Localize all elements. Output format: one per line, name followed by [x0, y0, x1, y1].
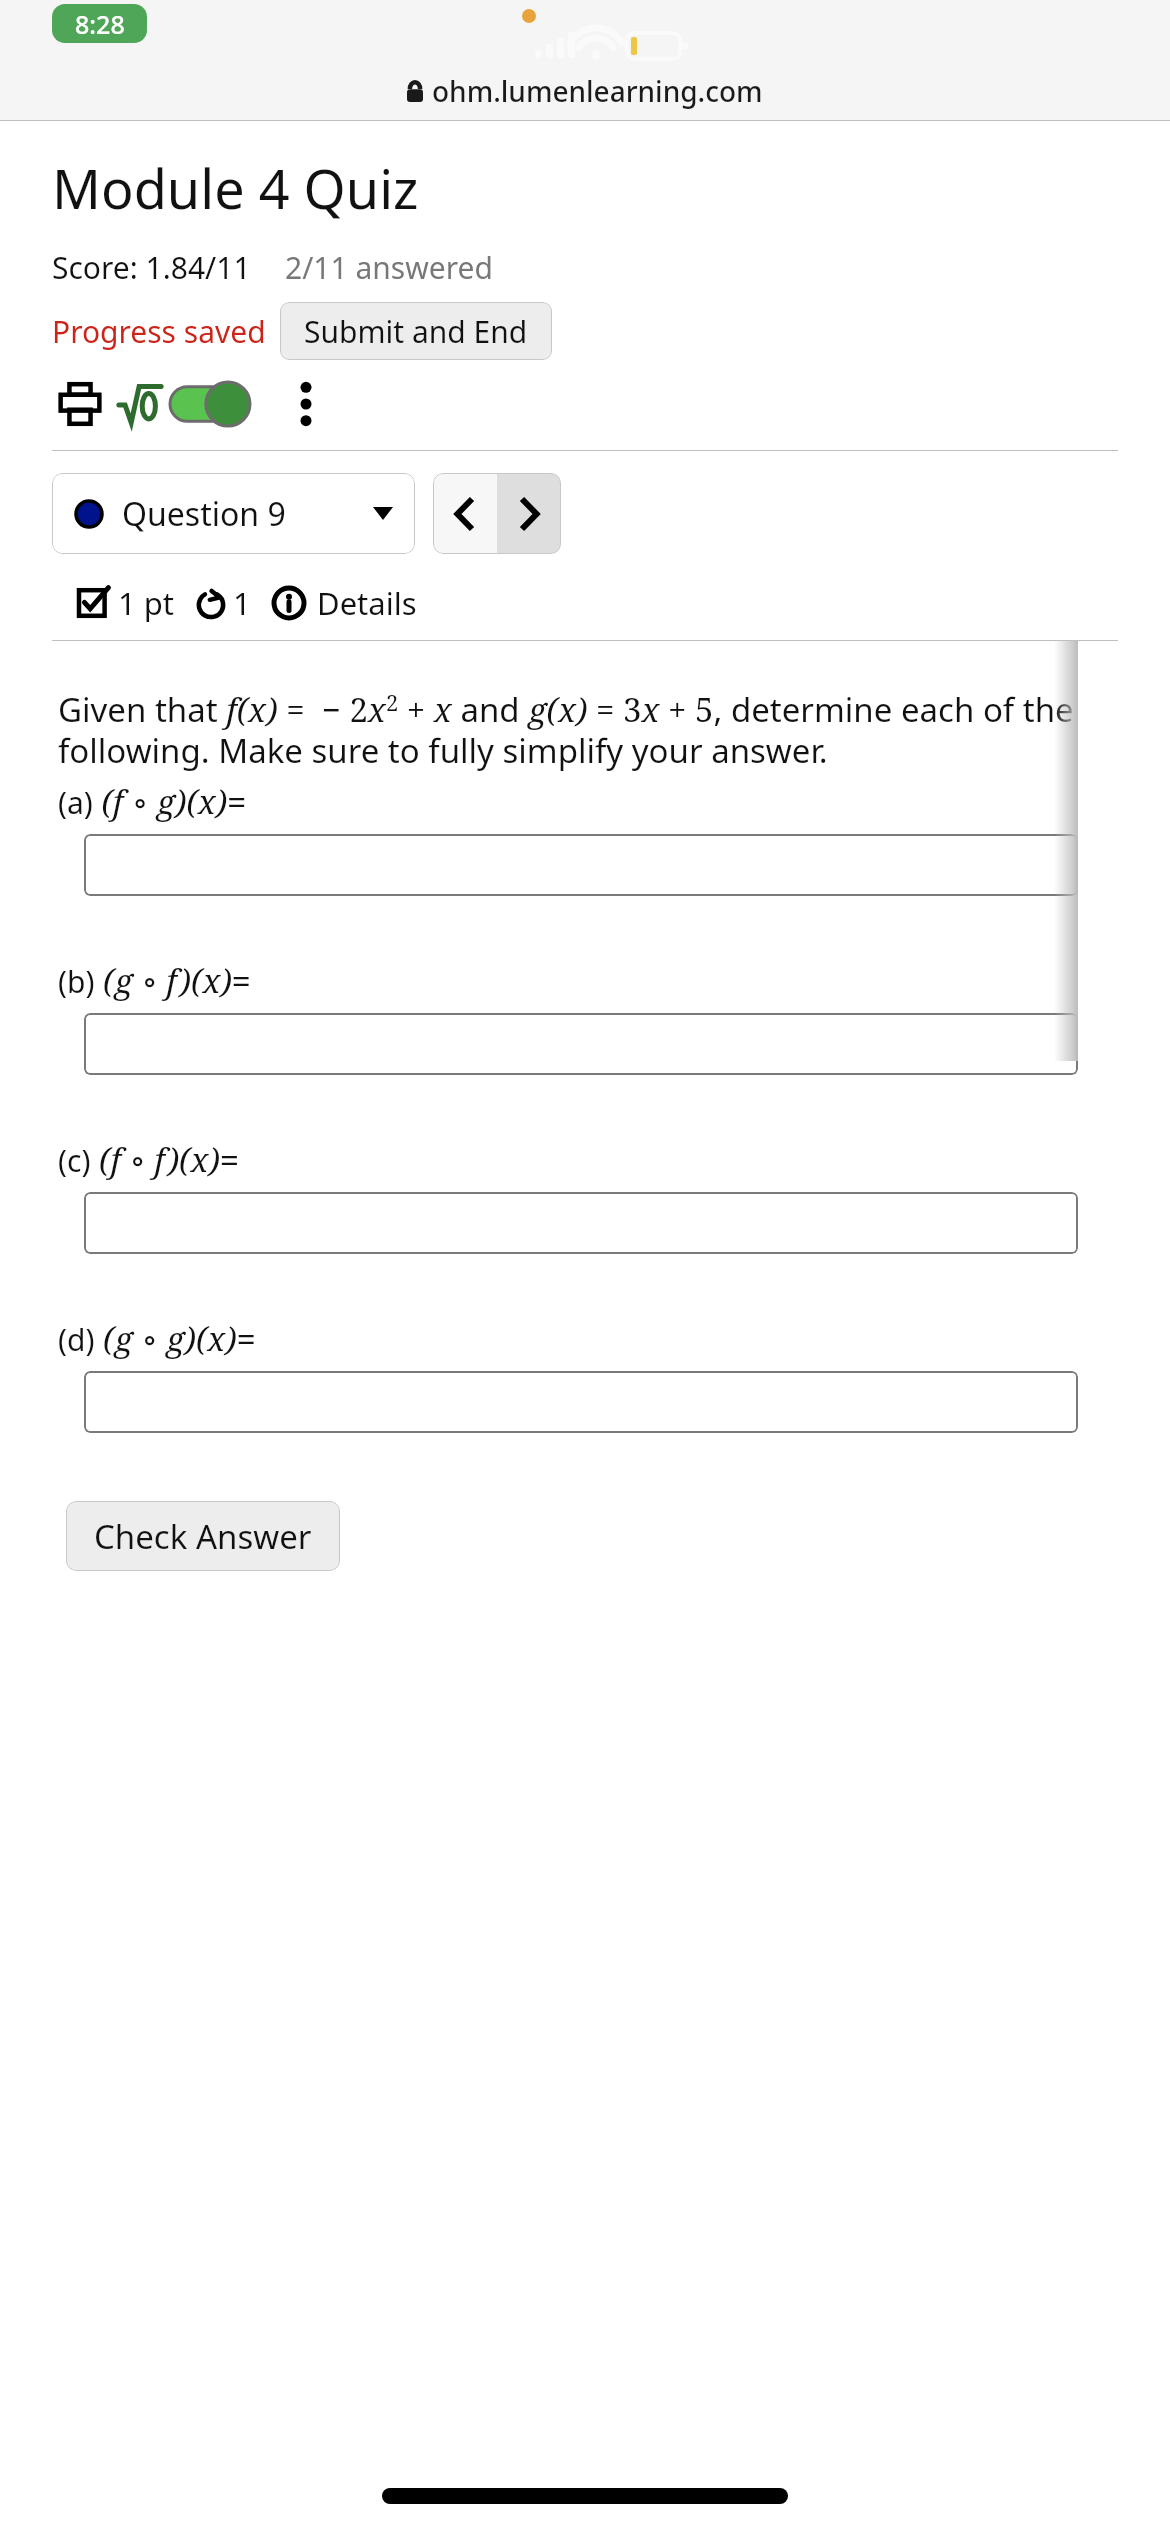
staticText: Given that f(x) = − 2x2 + x and g(x) = 3… [58, 687, 1078, 773]
staticText: Details [317, 582, 417, 624]
button[interactable]: Print [52, 376, 108, 432]
staticText: Submit and End [304, 311, 528, 352]
button[interactable]: Submit and End [280, 302, 552, 360]
button[interactable]: More options [278, 376, 334, 432]
staticText: ohm.lumenlearning.com [432, 72, 763, 110]
button[interactable]: Question 9 [52, 473, 415, 554]
staticText: (a) (f ∘ g)(x)= [58, 779, 247, 824]
staticText: 1 [233, 582, 251, 624]
staticText: (d) (g ∘ g)(x)= [58, 1316, 256, 1361]
button[interactable]: Math input toggle [166, 380, 252, 428]
staticText: Score: 1.84/11 [52, 247, 251, 288]
staticText: (c) (f ∘ f)(x)= [58, 1137, 239, 1182]
button[interactable]: Check Answer [66, 1501, 340, 1571]
button[interactable]: Previous question [433, 473, 497, 554]
staticText: 8:28 [75, 7, 125, 41]
staticText: Progress saved [52, 311, 266, 352]
staticText: Module 4 Quiz [52, 151, 419, 225]
staticText: Question 9 [122, 492, 286, 536]
staticText: (b) (g ∘ f)(x)= [58, 958, 251, 1003]
button[interactable]: Details [271, 582, 417, 624]
staticText: 2/11 answered [285, 247, 493, 288]
staticText: 1 pt [118, 582, 175, 624]
staticText: Check Answer [94, 1514, 312, 1559]
button[interactable] [84, 1371, 1078, 1433]
button[interactable]: Next question [497, 473, 561, 554]
button[interactable] [84, 1013, 1078, 1075]
button[interactable] [84, 1192, 1078, 1254]
button[interactable] [84, 834, 1078, 896]
